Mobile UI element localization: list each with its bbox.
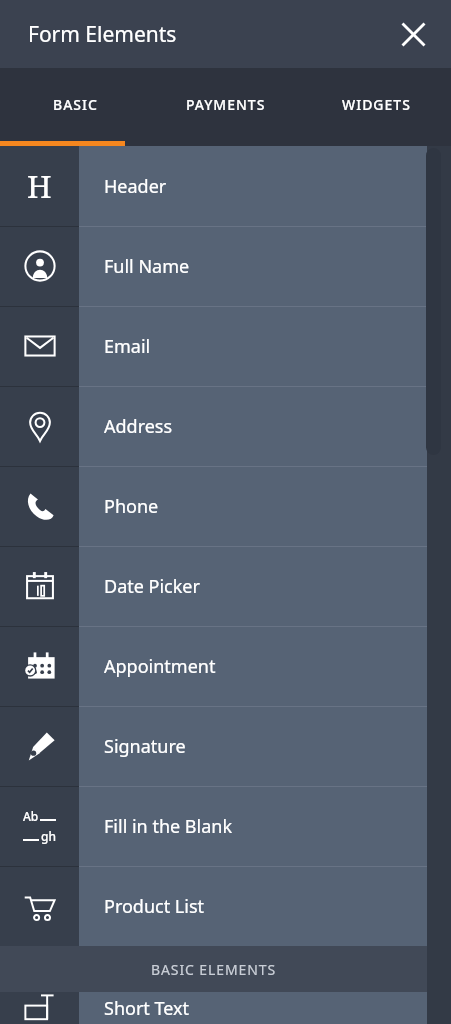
button[interactable]: WIDGETS [301, 68, 451, 141]
staticText: Address [104, 414, 173, 439]
button[interactable]: Product List [0, 866, 427, 946]
staticText: Ab [23, 808, 39, 824]
staticText: BASIC ELEMENTS [151, 960, 277, 979]
button[interactable]: Phone [0, 466, 427, 546]
button[interactable]: BASIC [0, 68, 151, 141]
staticText: Header [104, 174, 167, 199]
button[interactable]: Appointment [0, 626, 427, 706]
staticText: PAYMENTS [186, 95, 266, 114]
staticText: Fill in the Blank [104, 814, 233, 839]
staticText: H [27, 165, 52, 207]
button[interactable]: H [0, 146, 427, 226]
button[interactable]: Signature [0, 706, 427, 786]
button[interactable]: Short Text [0, 992, 427, 1024]
button[interactable]: Address [0, 386, 427, 466]
staticText: Product List [104, 894, 205, 919]
staticText: Phone [104, 494, 159, 519]
staticText: Appointment [104, 654, 216, 679]
staticText: BASIC [53, 95, 98, 114]
button[interactable]: Close [387, 8, 439, 60]
staticText: Full Name [104, 254, 190, 279]
staticText: Form Elements [28, 20, 177, 49]
staticText: WIDGETS [342, 95, 411, 114]
staticText: Signature [104, 734, 186, 759]
button[interactable]: Date Picker [0, 546, 427, 626]
staticText: Date Picker [104, 574, 200, 599]
button[interactable]: Email [0, 306, 427, 386]
button[interactable]: Full Name [0, 226, 427, 306]
button[interactable]: PAYMENTS [151, 68, 301, 141]
staticText: gh [41, 828, 56, 844]
staticText: Short Text [104, 996, 190, 1021]
staticText: Email [104, 334, 151, 359]
button[interactable]: Ab [0, 786, 427, 866]
